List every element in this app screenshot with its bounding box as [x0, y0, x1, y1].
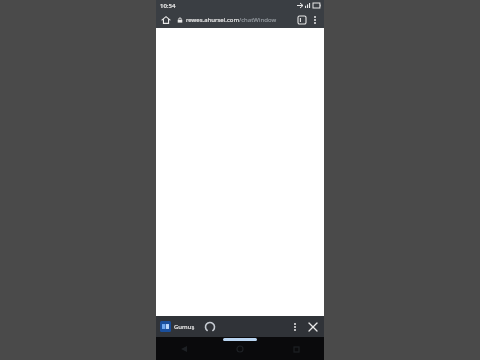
button[interactable]: Home: [234, 343, 246, 355]
button[interactable]: Close: [306, 320, 320, 334]
staticText: Gumuş: [174, 323, 195, 331]
button[interactable]: More options: [309, 14, 321, 26]
button[interactable]: Recent apps: [290, 343, 302, 355]
staticText: rewes.ahursel.com: [186, 16, 239, 24]
button[interactable]: rewes.ahursel.com: [186, 16, 293, 24]
button[interactable]: Tabs: [295, 13, 309, 27]
button[interactable]: Back: [178, 343, 190, 355]
staticText: /chatWindow: [239, 16, 277, 24]
button[interactable]: Home: [159, 13, 173, 27]
staticText: 10:54: [160, 2, 176, 10]
button[interactable]: More options: [288, 320, 302, 334]
button[interactable]: Gumuş: [160, 321, 195, 332]
